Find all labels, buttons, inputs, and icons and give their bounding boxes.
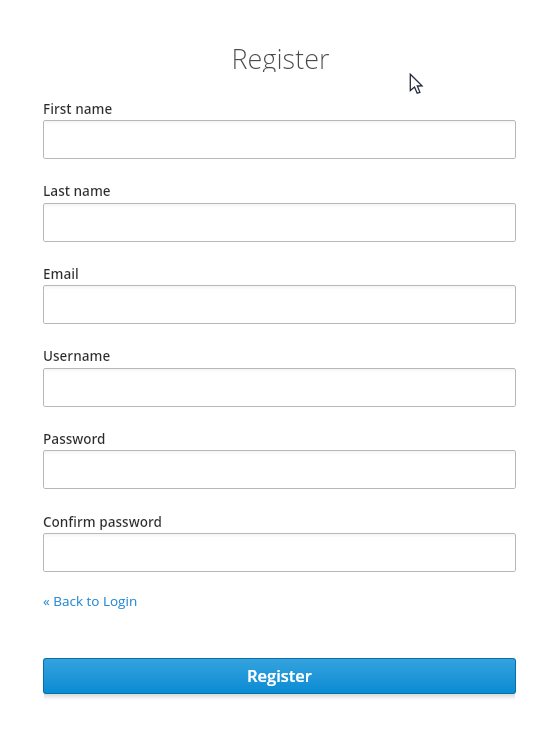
button[interactable]: Password bbox=[43, 430, 243, 448]
button[interactable]: Username bbox=[43, 368, 516, 407]
button[interactable]: Confirm password bbox=[43, 533, 516, 572]
button[interactable]: Email bbox=[43, 285, 516, 324]
button[interactable]: First name bbox=[43, 100, 243, 118]
staticText: First name bbox=[43, 100, 113, 118]
staticText: Last name bbox=[43, 182, 111, 200]
button[interactable]: Username bbox=[43, 347, 243, 365]
button[interactable]: Last name bbox=[43, 182, 243, 200]
button[interactable]: Password bbox=[43, 450, 516, 489]
button[interactable]: Register bbox=[43, 658, 516, 694]
button[interactable]: Last name bbox=[43, 203, 516, 242]
staticText: Confirm password bbox=[43, 513, 162, 531]
staticText: Email bbox=[43, 265, 79, 283]
button[interactable]: Email bbox=[43, 265, 243, 283]
staticText: « Back to Login bbox=[43, 592, 138, 610]
button[interactable]: « Back to Login bbox=[43, 591, 138, 610]
staticText: Register bbox=[247, 664, 312, 686]
staticText: Username bbox=[43, 347, 111, 365]
staticText: Password bbox=[43, 430, 106, 448]
button[interactable]: First name bbox=[43, 120, 516, 159]
button[interactable]: Confirm password bbox=[43, 513, 243, 531]
staticText: Register bbox=[231, 40, 330, 72]
